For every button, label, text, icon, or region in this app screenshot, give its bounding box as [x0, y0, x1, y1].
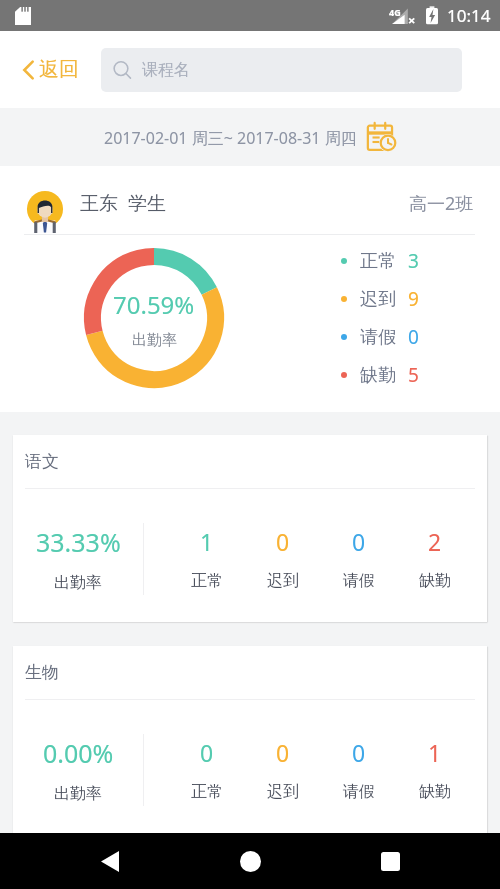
staticText: 0 — [408, 324, 419, 350]
staticText: 高一2班 — [409, 191, 474, 216]
staticText: 请假 — [343, 571, 375, 591]
staticText: 课程名 — [142, 60, 190, 80]
staticText: 缺勤 — [419, 571, 451, 591]
button[interactable]: Recent apps — [320, 833, 500, 889]
staticText: 1 — [200, 526, 214, 557]
staticText: 2017-02-01 周三~ 2017-08-31 周四 — [104, 127, 357, 149]
button[interactable]: 生物 — [13, 646, 487, 833]
button[interactable]: Home — [180, 833, 320, 889]
staticText: 迟到 — [267, 782, 299, 802]
button[interactable]: 请假 — [307, 318, 500, 356]
staticText: 出勤率 — [54, 784, 102, 804]
staticText: 33.33% — [36, 525, 121, 559]
button[interactable]: 迟到 — [307, 280, 500, 318]
button[interactable]: 课程名 — [101, 48, 462, 92]
staticText: 1 — [428, 737, 442, 768]
staticText: 王东 学生 — [80, 190, 166, 216]
staticText: 正常 — [191, 782, 223, 802]
button[interactable]: 缺勤 — [307, 356, 500, 394]
staticText: 请假 — [343, 782, 375, 802]
button[interactable]: 语文 — [13, 435, 487, 622]
staticText: 缺勤 — [419, 782, 451, 802]
button[interactable]: Back — [0, 833, 180, 889]
staticText: 正常 — [360, 250, 396, 273]
staticText: 2 — [428, 526, 442, 557]
button[interactable]: 正常 — [307, 242, 500, 280]
staticText: 10:14 — [447, 4, 491, 27]
staticText: 70.59% — [113, 288, 195, 321]
staticText: 迟到 — [267, 571, 299, 591]
staticText: 正常 — [191, 571, 223, 591]
staticText: 0 — [276, 526, 290, 557]
staticText: 0 — [200, 737, 214, 768]
button[interactable]: 返回 — [13, 47, 89, 92]
staticText: 出勤率 — [54, 573, 102, 593]
staticText: 0 — [352, 737, 366, 768]
button[interactable]: 2017-02-01 周三~ 2017-08-31 周四 — [98, 116, 403, 159]
staticText: 请假 — [360, 326, 396, 349]
staticText: 5 — [408, 362, 419, 388]
staticText: 返回 — [39, 57, 79, 82]
other: Pick date range — [366, 122, 397, 153]
staticText: 4G — [389, 6, 401, 18]
staticText: 0 — [276, 737, 290, 768]
staticText: 出勤率 — [132, 331, 177, 350]
staticText: 3 — [408, 248, 419, 274]
staticText: 生物 — [25, 662, 59, 683]
staticText: 语文 — [25, 451, 59, 472]
staticText: 迟到 — [360, 288, 396, 311]
staticText: 0 — [352, 526, 366, 557]
staticText: 9 — [408, 286, 419, 312]
staticText: 0.00% — [43, 736, 114, 770]
staticText: 缺勤 — [360, 364, 396, 387]
